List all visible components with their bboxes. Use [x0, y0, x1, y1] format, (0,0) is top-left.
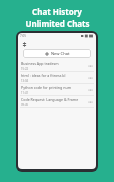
staticText: Business App tradesm [21, 61, 59, 66]
button[interactable]: More options [87, 86, 93, 94]
staticText: 7:05 [20, 34, 26, 38]
staticText: Unlimited Chats [25, 18, 90, 29]
button[interactable]: Business App tradesm [18, 60, 96, 72]
staticText: 13:04 [21, 79, 29, 83]
staticText: Chat History [32, 6, 82, 17]
button[interactable]: Menu [21, 41, 27, 47]
button[interactable]: More options [87, 74, 93, 82]
button[interactable]: Code Request: Language & Frame [18, 96, 96, 108]
staticText: 15:22 [21, 67, 29, 71]
staticText: Python code for printing num [21, 85, 71, 90]
button[interactable]: Python code for printing num [18, 84, 96, 96]
staticText: html : ideas for a fitness bl [21, 73, 66, 78]
staticText: New Chat [51, 51, 70, 56]
button[interactable]: More options [87, 62, 93, 70]
button[interactable]: html : ideas for a fitness bl [18, 72, 96, 84]
button[interactable]: New Chat [23, 49, 91, 58]
staticText: 09:45 [21, 103, 29, 107]
staticText: 11:41 [21, 91, 29, 95]
staticText: Code Request: Language & Frame [21, 97, 79, 102]
button[interactable]: More options [87, 98, 93, 106]
